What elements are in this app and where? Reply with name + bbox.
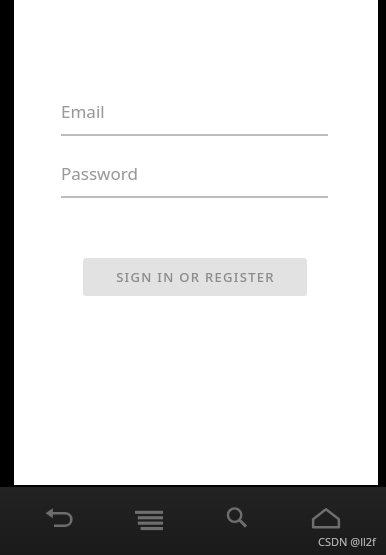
staticText: SIGN IN OR REGISTER bbox=[116, 268, 275, 286]
button[interactable]: Back bbox=[31, 493, 89, 543]
button[interactable]: Password bbox=[61, 162, 328, 198]
button[interactable]: Home bbox=[297, 493, 355, 543]
button[interactable]: Email bbox=[61, 100, 328, 136]
button[interactable]: Search bbox=[208, 493, 266, 543]
button[interactable]: SIGN IN OR REGISTER bbox=[83, 258, 307, 296]
staticText: Email bbox=[61, 100, 105, 123]
staticText: Password bbox=[61, 162, 138, 185]
staticText: CSDN @ll2f bbox=[318, 534, 376, 549]
button[interactable]: Menu bbox=[120, 493, 178, 543]
